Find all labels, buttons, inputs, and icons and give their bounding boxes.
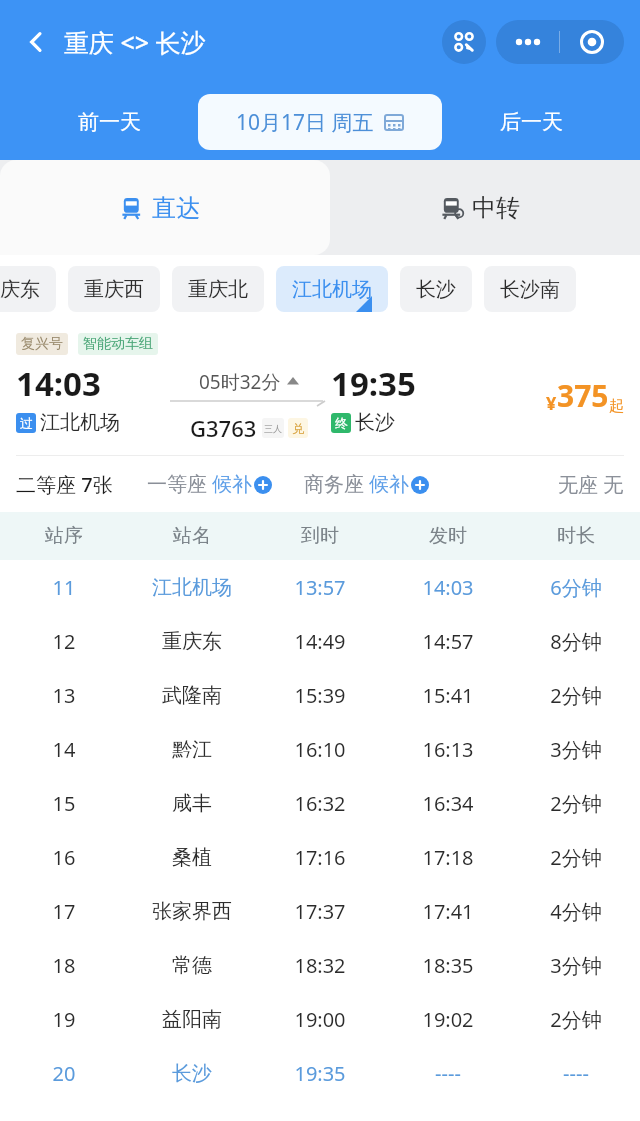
staticText: 14:03 (16, 361, 101, 406)
staticText: 18:35 (384, 952, 512, 979)
staticText: 长沙 (416, 277, 456, 302)
staticText: 19:00 (256, 1006, 384, 1033)
button[interactable]: 中转 (320, 160, 640, 255)
staticText: 江北机场 (292, 277, 372, 302)
staticText: 一等座 (147, 472, 207, 497)
staticText: 长沙南 (500, 277, 560, 302)
staticText: 重庆东 (0, 277, 40, 302)
button[interactable]: 江北机场 (276, 266, 388, 312)
staticText: 中转 (472, 193, 520, 223)
staticText: 19 (0, 1006, 128, 1033)
staticText: 17 (0, 898, 128, 925)
staticText: ---- (384, 1060, 512, 1087)
staticText: 到时 (256, 524, 384, 548)
button[interactable]: 14 (0, 722, 640, 776)
button[interactable]: 17 (0, 884, 640, 938)
staticText: 桑植 (128, 845, 256, 870)
staticText: 张家界西 (128, 899, 256, 924)
staticText: 4分钟 (512, 898, 640, 925)
staticText: 兑 (292, 421, 304, 436)
staticText: 黔江 (128, 737, 256, 762)
staticText: 16 (0, 844, 128, 871)
staticText: 12 (0, 628, 128, 655)
button[interactable]: 16 (0, 830, 640, 884)
button[interactable]: 重庆西 (68, 266, 160, 312)
staticText: 重庆北 (188, 277, 248, 302)
button[interactable]: Back (16, 22, 56, 62)
button[interactable]: Target (560, 20, 624, 64)
button[interactable]: 19 (0, 992, 640, 1046)
staticText: 重庆西 (84, 277, 144, 302)
button[interactable]: 12 (0, 614, 640, 668)
staticText: 15:41 (384, 682, 512, 709)
staticText: ¥ (546, 391, 557, 416)
staticText: 江北机场 (128, 575, 256, 600)
button[interactable]: Scan (442, 20, 486, 64)
staticText: 15:39 (256, 682, 384, 709)
staticText: 18 (0, 952, 128, 979)
staticText: 直达 (152, 193, 200, 223)
staticText: 常德 (128, 953, 256, 978)
staticText: 三人 (264, 423, 282, 434)
staticText: 8分钟 (512, 628, 640, 655)
staticText: 候补 (212, 472, 252, 497)
staticText: 无座 无 (558, 471, 624, 498)
button[interactable]: 15 (0, 776, 640, 830)
staticText: 16:13 (384, 736, 512, 763)
staticText: 重庆 <> 长沙 (64, 25, 206, 59)
staticText: 15 (0, 790, 128, 817)
button[interactable]: 20 (0, 1046, 640, 1100)
staticText: 14:03 (384, 574, 512, 601)
staticText: 武隆南 (128, 683, 256, 708)
staticText: 13:57 (256, 574, 384, 601)
button[interactable]: 重庆北 (172, 266, 264, 312)
staticText: 江北机场 (40, 410, 120, 435)
staticText: 咸丰 (128, 791, 256, 816)
staticText: 站序 (0, 524, 128, 548)
button[interactable]: 重庆东 (0, 266, 56, 312)
button[interactable]: 长沙 (400, 266, 472, 312)
staticText: 17:41 (384, 898, 512, 925)
button[interactable]: 长沙南 (484, 266, 576, 312)
staticText: 商务座 (304, 472, 364, 497)
staticText: 后一天 (500, 109, 563, 135)
button[interactable]: 11 (0, 560, 640, 614)
button[interactable]: More options (496, 20, 559, 64)
staticText: 14:57 (384, 628, 512, 655)
staticText: 16:32 (256, 790, 384, 817)
staticText: 375 (557, 375, 609, 416)
staticText: 20 (0, 1060, 128, 1087)
staticText: 3分钟 (512, 952, 640, 979)
staticText: 2分钟 (512, 1006, 640, 1033)
staticText: 终 (335, 415, 348, 431)
staticText: 候补 (369, 472, 409, 497)
staticText: 2分钟 (512, 844, 640, 871)
button[interactable]: 后一天 (442, 109, 620, 135)
staticText: 二等座 7张 (16, 471, 113, 498)
staticText: 起 (609, 397, 624, 416)
staticText: 19:35 (256, 1060, 384, 1087)
button[interactable]: 前一天 (20, 109, 198, 135)
staticText: 16:34 (384, 790, 512, 817)
staticText: 17:18 (384, 844, 512, 871)
staticText: G3763 (190, 413, 257, 443)
staticText: 14 (0, 736, 128, 763)
staticText: ---- (512, 1060, 640, 1087)
button[interactable]: 18 (0, 938, 640, 992)
button[interactable]: 一等座 (147, 472, 272, 497)
button[interactable]: 直达 (0, 160, 320, 255)
staticText: 发时 (384, 524, 512, 548)
staticText: 长沙 (128, 1061, 256, 1086)
staticText: 05时32分 (199, 369, 281, 395)
button[interactable]: 商务座 (304, 472, 429, 497)
staticText: 19:02 (384, 1006, 512, 1033)
staticText: 10月17日 周五 (236, 108, 374, 137)
staticText: 3分钟 (512, 736, 640, 763)
staticText: 14:49 (256, 628, 384, 655)
staticText: 19:35 (331, 361, 416, 406)
staticText: 时长 (512, 524, 640, 548)
button[interactable]: 13 (0, 668, 640, 722)
button[interactable]: 10月17日 周五 (198, 94, 442, 150)
staticText: 11 (0, 574, 128, 601)
staticText: 重庆东 (128, 629, 256, 654)
